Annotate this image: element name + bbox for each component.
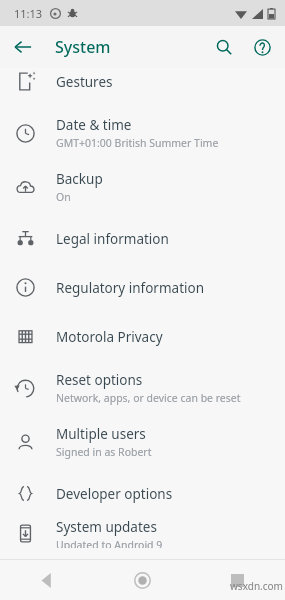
staticText: 11:13 (14, 6, 43, 21)
staticText: System updates (56, 518, 157, 536)
staticText: Regulatory information (56, 279, 205, 297)
button[interactable]: Multiple users (0, 415, 285, 469)
button[interactable]: Home (95, 560, 190, 600)
staticText: GMT+01:00 British Summer Time (56, 136, 219, 150)
button[interactable]: Gestures (0, 57, 285, 106)
button[interactable]: Developer options (0, 469, 285, 518)
button[interactable]: Regulatory information (0, 263, 285, 312)
button[interactable]: Date & time (0, 106, 285, 160)
staticText: Signed in as Robert (56, 445, 152, 459)
staticText: Motorola Privacy (56, 328, 163, 346)
button[interactable]: Reset options (0, 361, 285, 415)
button[interactable]: Recent apps (190, 560, 285, 600)
staticText: Reset options (56, 371, 143, 389)
staticText: On (56, 190, 71, 204)
button[interactable]: Search (207, 30, 241, 64)
staticText: Backup (56, 170, 103, 188)
button[interactable]: Motorola Privacy (0, 312, 285, 361)
staticText: Gestures (56, 73, 113, 91)
staticText: Multiple users (56, 425, 146, 443)
staticText: Updated to Android 9 (56, 538, 163, 548)
button[interactable]: Back (0, 560, 95, 600)
staticText: System (55, 36, 111, 58)
staticText: Date & time (56, 116, 132, 134)
staticText: Developer options (56, 485, 173, 503)
staticText: wsxdn.com (230, 579, 283, 593)
button[interactable]: Back (6, 30, 40, 64)
staticText: Legal information (56, 230, 169, 248)
button[interactable]: Help (245, 30, 279, 64)
button[interactable]: Legal information (0, 214, 285, 263)
button[interactable]: Backup (0, 160, 285, 214)
staticText: Network, apps, or device can be reset (56, 391, 241, 405)
button[interactable]: System updates (0, 518, 285, 548)
